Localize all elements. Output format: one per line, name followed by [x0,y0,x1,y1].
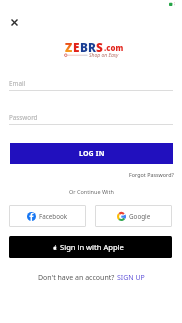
button[interactable]: Forgot Password? [129,171,174,178]
button[interactable]: Google [95,205,172,227]
staticText: Password [9,113,38,122]
button[interactable]: Close [6,14,23,31]
button[interactable]: Password [9,113,173,125]
staticText: Or Continue With [69,188,114,195]
button[interactable]: Sign in with Apple [9,236,172,258]
staticText: Z [65,39,73,55]
button[interactable]: SIGN UP [117,273,145,283]
staticText: B [80,39,88,55]
staticText: Don't have an account? [38,273,117,283]
staticText: Google [129,212,151,221]
staticText: R [88,39,96,55]
button[interactable]: LOG IN [10,143,173,164]
staticText: Sign in with Apple [60,242,124,252]
button[interactable]: Facebook [9,205,86,227]
staticText: SIGN UP [117,273,145,283]
staticText: LOG IN [79,149,105,159]
staticText: E [73,39,80,55]
staticText: S [96,39,103,55]
staticText: Email [9,79,26,88]
staticText: .com [104,43,124,54]
staticText: Facebook [39,212,68,221]
button[interactable]: Email [9,79,173,91]
staticText: Shop on Easy [89,52,119,59]
staticText: Forgot Password? [129,171,174,178]
